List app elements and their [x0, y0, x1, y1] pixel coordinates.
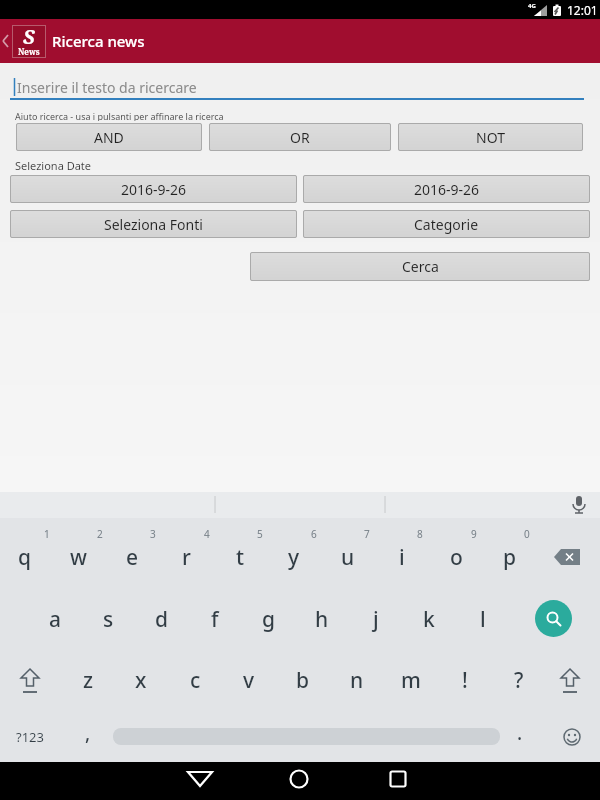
button[interactable]: Categorie	[303, 210, 590, 238]
button[interactable]: S	[12, 25, 46, 58]
button[interactable]: !	[439, 652, 491, 708]
staticText: q	[18, 543, 32, 572]
button[interactable]	[2, 652, 58, 708]
button[interactable]: y	[268, 529, 320, 585]
staticText: g	[262, 605, 276, 634]
button[interactable]: z	[62, 652, 114, 708]
button[interactable]: Inserire il testo da ricercare	[17, 76, 317, 98]
staticText: S	[23, 23, 35, 50]
button[interactable]: NOT	[398, 123, 583, 151]
staticText: 4	[204, 527, 210, 541]
staticText: n	[350, 666, 364, 695]
staticText: z	[83, 666, 94, 695]
staticText: 6	[311, 527, 317, 541]
staticText: 9	[471, 527, 477, 541]
staticText: i	[399, 543, 405, 572]
button[interactable]	[548, 712, 598, 762]
staticText: 8	[417, 527, 423, 541]
staticText: w	[70, 543, 87, 572]
button[interactable]: b	[277, 652, 329, 708]
staticText: Aiuto ricerca - usa i pulsanti per affin…	[15, 110, 224, 121]
button[interactable]: ,	[62, 705, 114, 761]
staticText: Seleziona Fonti	[104, 215, 203, 234]
staticText: 7	[364, 527, 370, 541]
staticText: .	[517, 720, 523, 746]
button[interactable]: u	[322, 529, 374, 585]
button[interactable]: ?123	[8, 722, 52, 752]
staticText: c	[190, 666, 201, 695]
button[interactable]: a	[29, 591, 81, 647]
staticText: !	[462, 666, 468, 695]
staticText: m	[401, 666, 421, 695]
button[interactable]: r	[160, 529, 212, 585]
staticText: Categorie	[414, 215, 479, 234]
button[interactable]: d	[136, 591, 188, 647]
button[interactable]: n	[331, 652, 383, 708]
button[interactable]: s	[82, 591, 134, 647]
button[interactable]: o	[430, 529, 482, 585]
staticText: e	[126, 543, 139, 572]
button[interactable]: l	[457, 591, 509, 647]
staticText: l	[480, 605, 486, 634]
staticText: AND	[94, 128, 124, 147]
button[interactable]	[542, 652, 598, 708]
staticText: 1	[44, 527, 50, 541]
button[interactable]: k	[403, 591, 455, 647]
button[interactable]: 2016-9-26	[303, 175, 590, 203]
button[interactable]	[389, 770, 407, 788]
button[interactable]: AND	[16, 123, 202, 151]
button[interactable]	[0, 19, 12, 63]
button[interactable]: t	[214, 529, 266, 585]
button[interactable]: j	[350, 591, 402, 647]
button[interactable]	[540, 530, 598, 584]
staticText: a	[49, 605, 62, 634]
button[interactable]: e	[106, 529, 158, 585]
staticText: Inserire il testo da ricercare	[17, 78, 197, 97]
staticText: x	[135, 666, 147, 695]
button[interactable]: i	[376, 529, 428, 585]
button[interactable]	[288, 768, 310, 790]
staticText: 2016-9-26	[121, 180, 187, 199]
staticText: ,	[85, 720, 91, 746]
staticText: f	[211, 605, 219, 634]
button[interactable]: g	[243, 591, 295, 647]
button[interactable]: q	[0, 529, 51, 585]
button[interactable]: 2016-9-26	[10, 175, 297, 203]
staticText: 12:01	[567, 2, 598, 18]
staticText: OR	[290, 128, 310, 147]
button[interactable]: p	[484, 529, 536, 585]
staticText: 3	[150, 527, 156, 541]
staticText: u	[341, 543, 355, 572]
staticText: Cerca	[402, 257, 439, 276]
staticText: 5	[257, 527, 263, 541]
staticText: p	[503, 543, 517, 572]
button[interactable]: h	[296, 591, 348, 647]
button[interactable]: ?	[493, 652, 545, 708]
button[interactable]	[535, 600, 572, 637]
staticText: Ricerca news	[52, 31, 145, 51]
staticText: o	[450, 543, 463, 572]
button[interactable]	[186, 769, 214, 789]
staticText: h	[315, 605, 329, 634]
staticText: r	[182, 543, 191, 572]
button[interactable]: Seleziona Fonti	[10, 210, 297, 238]
button[interactable]: m	[385, 652, 437, 708]
staticText: j	[373, 605, 379, 634]
button[interactable]: c	[169, 652, 221, 708]
staticText: b	[296, 666, 310, 695]
staticText: s	[103, 605, 114, 634]
button[interactable]: .	[494, 705, 546, 761]
staticText: k	[423, 605, 435, 634]
button[interactable]: Cerca	[250, 252, 590, 281]
staticText: News	[18, 46, 40, 57]
button[interactable]: v	[223, 652, 275, 708]
button[interactable]: f	[189, 591, 241, 647]
button[interactable]: OR	[209, 123, 391, 151]
button[interactable]: x	[115, 652, 167, 708]
staticText: ?	[514, 666, 524, 695]
button[interactable]: w	[52, 529, 104, 585]
staticText: 2	[97, 527, 103, 541]
